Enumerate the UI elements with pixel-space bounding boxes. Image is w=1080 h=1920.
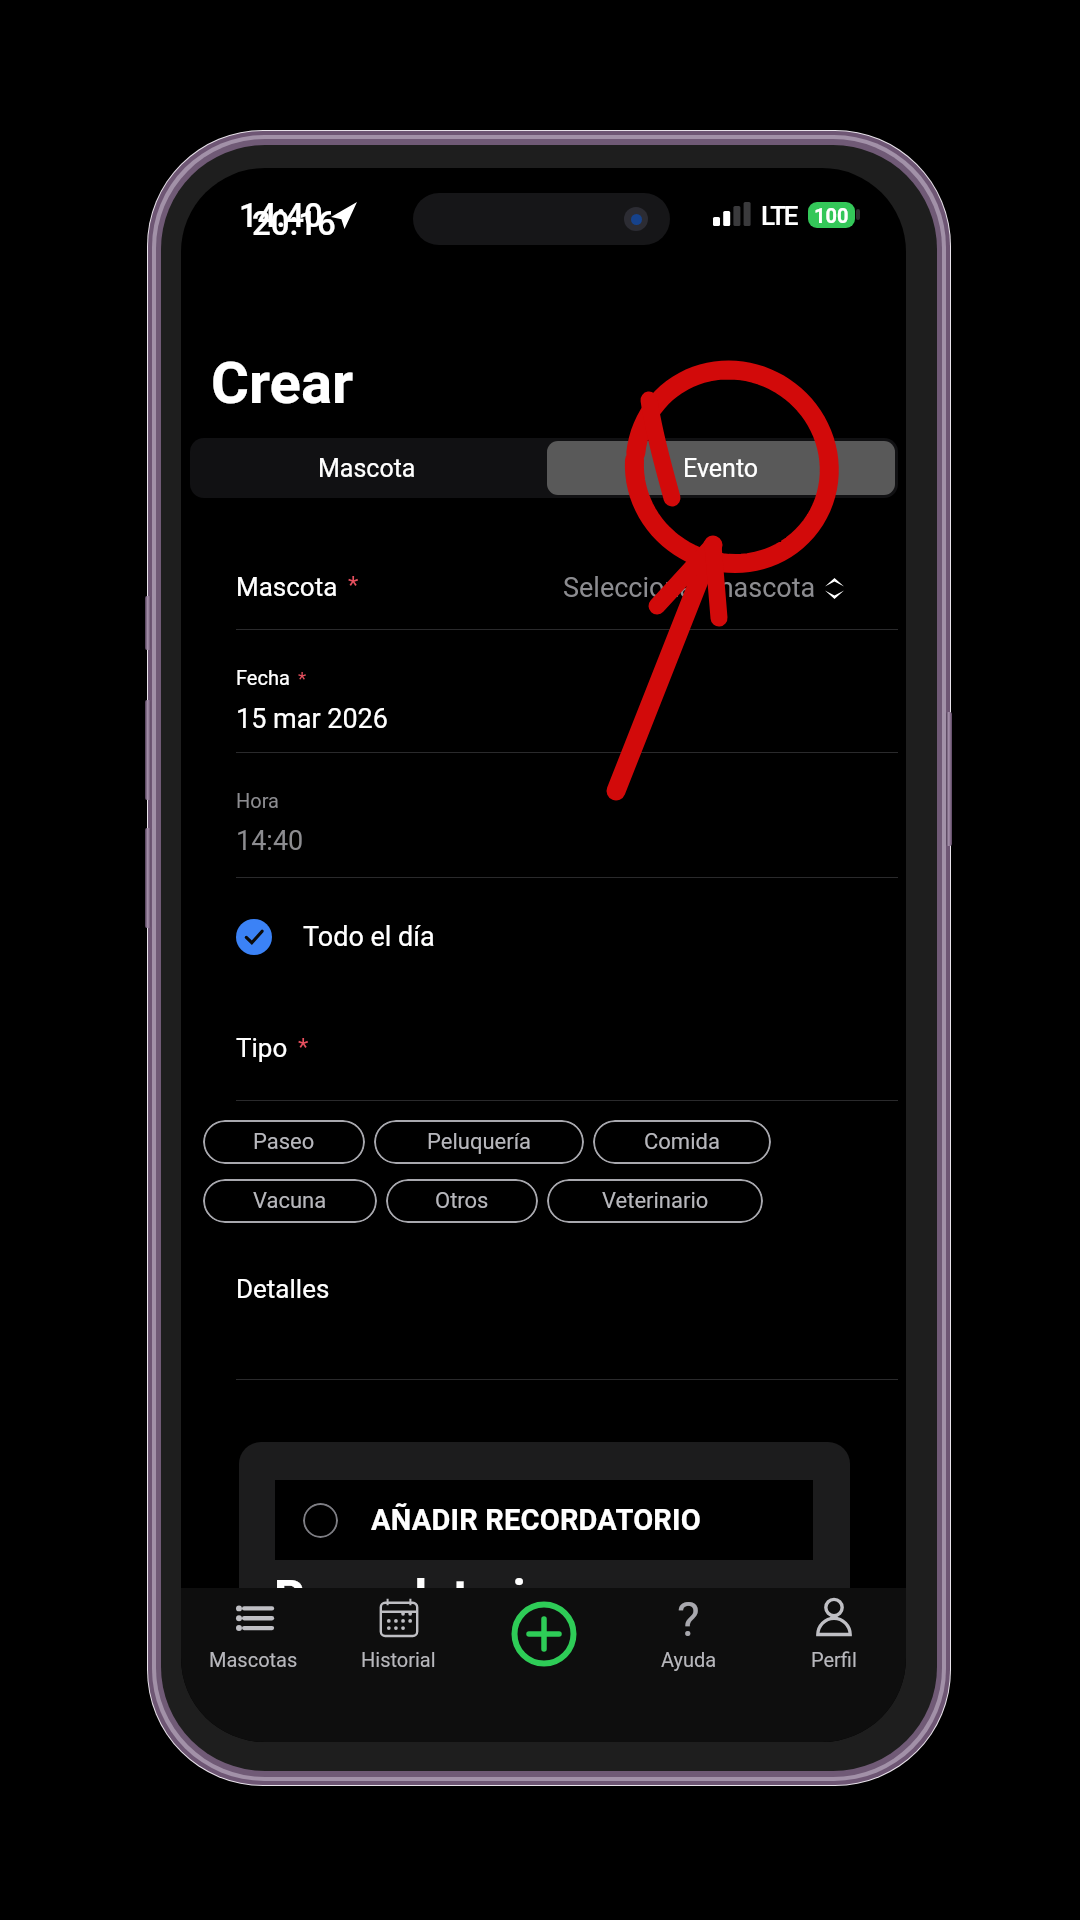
button[interactable]: Mascota: [190, 438, 544, 498]
staticText: Fecha: [236, 666, 290, 689]
button[interactable]: Veterinario: [547, 1179, 763, 1223]
staticText: Evento: [683, 454, 759, 483]
staticText: Mascota: [236, 572, 338, 602]
button[interactable]: AÑADIR RECORDATORIO: [275, 1480, 813, 1560]
staticText: *: [298, 667, 307, 689]
staticText: Mascotas: [209, 1648, 298, 1671]
staticText: Hora: [236, 789, 279, 812]
staticText: 100: [814, 204, 849, 227]
button[interactable]: Mascotas: [181, 1588, 326, 1742]
staticText: Mascota: [318, 454, 416, 483]
staticText: Paseo: [253, 1129, 315, 1155]
staticText: *: [348, 571, 359, 599]
staticText: *: [298, 1033, 309, 1061]
button[interactable]: Historial: [326, 1588, 471, 1742]
staticText: Seleccionar mascota: [563, 572, 816, 604]
staticText: LTE: [761, 201, 797, 231]
button[interactable]: Mascota: [236, 560, 898, 612]
staticText: Recordatorios: [274, 1569, 578, 1625]
staticText: Detalles: [236, 1274, 330, 1304]
staticText: 14:40: [239, 196, 323, 235]
button[interactable]: Perfil: [761, 1588, 906, 1742]
button[interactable]: Añadir: [471, 1588, 616, 1742]
button[interactable]: ?: [616, 1588, 761, 1742]
staticText: Perfil: [811, 1648, 857, 1671]
staticText: AÑADIR RECORDATORIO: [371, 1503, 701, 1537]
staticText: Tipo: [236, 1033, 288, 1063]
staticText: 20:16: [252, 204, 336, 243]
staticText: Historial: [361, 1648, 436, 1671]
staticText: Veterinario: [602, 1188, 709, 1214]
button[interactable]: Peluquería: [374, 1120, 584, 1164]
button[interactable]: Vacuna: [203, 1179, 377, 1223]
staticText: ?: [677, 1591, 700, 1647]
staticText: 15 mar 2026: [236, 703, 388, 735]
button[interactable]: Comida: [593, 1120, 771, 1164]
staticText: Vacuna: [253, 1188, 327, 1214]
button[interactable]: Paseo: [203, 1120, 365, 1164]
button[interactable]: Evento: [547, 441, 895, 495]
staticText: Otros: [435, 1188, 489, 1214]
staticText: Todo el día: [303, 921, 435, 953]
button[interactable]: Otros: [386, 1179, 538, 1223]
staticText: Comida: [644, 1129, 720, 1155]
staticText: Peluquería: [427, 1129, 532, 1155]
staticText: 14:40: [236, 825, 304, 857]
button[interactable]: Todo el día: [236, 918, 435, 956]
staticText: Ayuda: [661, 1648, 717, 1671]
staticText: Crear: [211, 349, 354, 417]
